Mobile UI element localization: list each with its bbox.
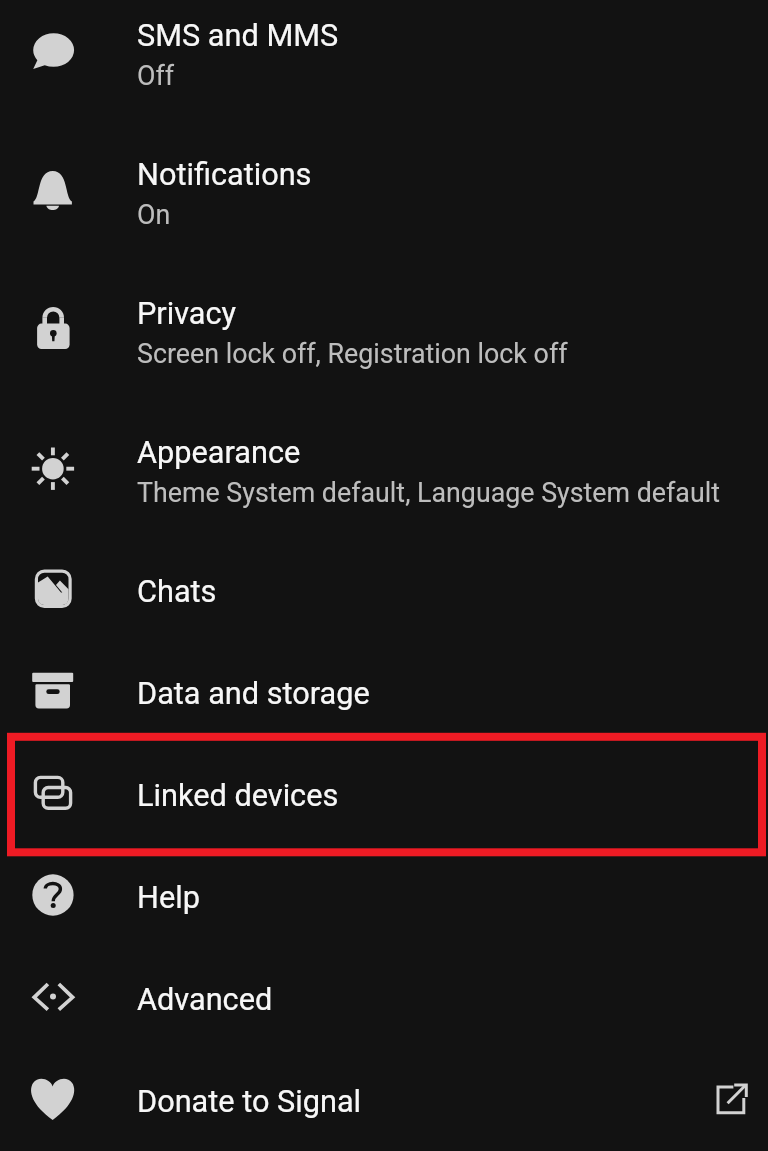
button[interactable]: Chats xyxy=(0,539,768,641)
staticText: Notifications xyxy=(137,157,312,193)
staticText: Data and storage xyxy=(137,676,370,712)
staticText: Theme System default, Language System de… xyxy=(137,477,720,508)
staticText: Screen lock off, Registration lock off xyxy=(137,338,568,369)
button[interactable]: Advanced xyxy=(0,947,768,1049)
button[interactable]: Help xyxy=(0,845,768,947)
button[interactable]: Data and storage xyxy=(0,641,768,743)
staticText: Off xyxy=(137,60,175,91)
button[interactable]: Privacy xyxy=(0,261,768,400)
button[interactable]: Donate to Signal xyxy=(0,1049,768,1134)
staticText: Donate to Signal xyxy=(137,1084,362,1120)
staticText: Linked devices xyxy=(137,778,339,814)
button[interactable]: Notifications xyxy=(0,122,768,261)
button[interactable]: Linked devices xyxy=(0,743,768,845)
button[interactable]: Appearance xyxy=(0,400,768,539)
button[interactable]: Open donation page xyxy=(709,1078,753,1122)
staticText: SMS and MMS xyxy=(137,18,339,54)
staticText: Privacy xyxy=(137,296,237,332)
staticText: On xyxy=(137,199,171,230)
button[interactable]: SMS and MMS xyxy=(0,0,768,122)
staticText: Chats xyxy=(137,574,217,610)
staticText: Help xyxy=(137,880,200,916)
staticText: Advanced xyxy=(137,982,273,1018)
staticText: Appearance xyxy=(137,435,301,471)
